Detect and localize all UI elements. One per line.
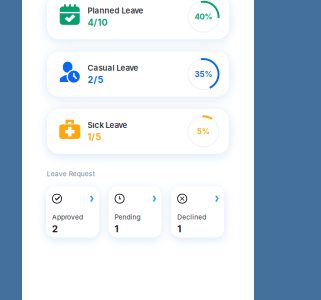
button[interactable]: Pending <box>109 186 162 238</box>
button[interactable]: Casual Leave <box>47 52 229 97</box>
staticText: 40% <box>194 12 212 21</box>
staticText: 35% <box>194 69 212 79</box>
staticText: Casual Leave <box>87 63 138 73</box>
button[interactable]: Planned Leave <box>47 0 229 39</box>
staticText: 1 <box>177 223 181 234</box>
staticText: 2/5 <box>87 74 103 85</box>
button[interactable]: Sick Leave <box>47 109 229 154</box>
staticText: Pending <box>115 213 141 221</box>
staticText: Approved <box>52 213 83 221</box>
staticText: 2 <box>52 223 58 234</box>
button[interactable]: Approved <box>46 186 99 238</box>
staticText: 1 <box>115 223 119 234</box>
button[interactable]: Declined <box>171 186 224 238</box>
staticText: Planned Leave <box>87 6 143 15</box>
staticText: Sick Leave <box>87 120 127 130</box>
staticText: 4/10 <box>87 17 107 28</box>
staticText: 1/5 <box>87 131 101 142</box>
staticText: 5% <box>197 127 210 136</box>
staticText: Declined <box>177 213 206 221</box>
staticText: Leave Request <box>47 170 95 178</box>
